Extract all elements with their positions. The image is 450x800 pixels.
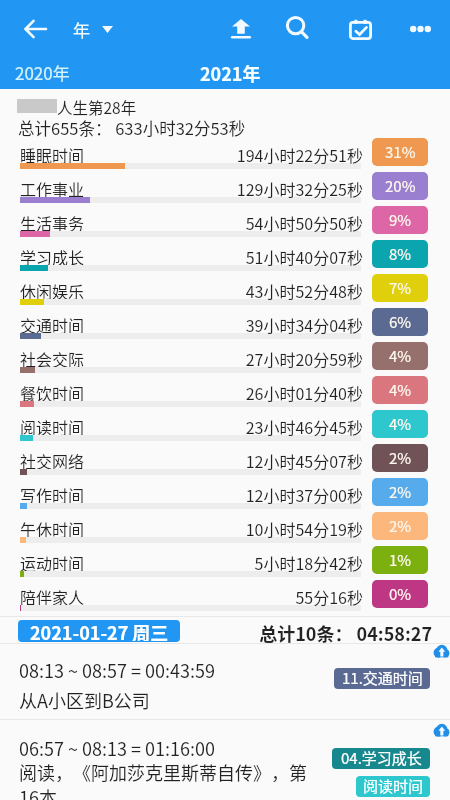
button[interactable]: 2020年 bbox=[0, 58, 150, 89]
staticText: 2020年 bbox=[15, 60, 70, 85]
staticText: 27小时20分59秒 bbox=[130, 347, 363, 370]
staticText: 08:13 ~ 08:57 = 00:43:59 bbox=[19, 657, 215, 683]
staticText: 11.交通时间 bbox=[342, 668, 423, 688]
button[interactable]: 阅读时间 bbox=[356, 776, 430, 797]
button[interactable]: 餐饮时间 bbox=[0, 376, 450, 410]
button[interactable]: 运动时间 bbox=[0, 546, 450, 580]
staticText: 23小时46分45秒 bbox=[130, 415, 363, 438]
button[interactable]: 08:13 ~ 08:57 = 00:43:59 bbox=[0, 644, 450, 719]
staticText: 午休时间 bbox=[20, 517, 85, 540]
button[interactable]: 社交网络 bbox=[0, 444, 450, 478]
button[interactable]: 学习成长 bbox=[0, 240, 450, 274]
button[interactable]: 2021年 bbox=[150, 58, 310, 89]
staticText: 生活事务 bbox=[20, 211, 85, 234]
staticText: 阅读时间 bbox=[20, 415, 85, 438]
button[interactable]: Calendar bbox=[336, 5, 384, 53]
staticText: 阅读，《阿加莎克里斯蒂自传》，第 16本 bbox=[19, 759, 319, 800]
button[interactable]: 06:57 ~ 08:13 = 01:16:00 bbox=[0, 720, 450, 800]
staticText: 年 bbox=[73, 17, 90, 42]
button[interactable]: Back bbox=[11, 5, 59, 53]
staticText: 2021-01-27 周三 bbox=[30, 620, 169, 641]
staticText: 工作事业 bbox=[20, 177, 85, 200]
staticText: 43小时52分48秒 bbox=[130, 279, 363, 302]
button[interactable]: 写作时间 bbox=[0, 478, 450, 512]
staticText: 51小时40分07秒 bbox=[130, 245, 363, 268]
button[interactable]: Sync to cloud bbox=[433, 644, 450, 658]
staticText: 10小时54分19秒 bbox=[130, 517, 363, 540]
staticText: 写作时间 bbox=[20, 483, 85, 506]
staticText: 总计10条： 04:58:27 bbox=[252, 620, 432, 646]
staticText: 39小时34分04秒 bbox=[130, 313, 363, 336]
button[interactable]: 阅读时间 bbox=[0, 410, 450, 444]
staticText: 社交网络 bbox=[20, 449, 85, 472]
staticText: 5小时18分42秒 bbox=[130, 551, 363, 574]
button[interactable]: 陪伴家人 bbox=[0, 580, 450, 614]
staticText: 4% bbox=[389, 379, 412, 401]
staticText: 55分16秒 bbox=[130, 585, 363, 608]
staticText: 06:57 ~ 08:13 = 01:16:00 bbox=[19, 735, 215, 761]
staticText: 人生第28年 bbox=[57, 96, 137, 118]
staticText: 陪伴家人 bbox=[20, 585, 85, 608]
staticText: 2% bbox=[389, 447, 412, 469]
staticText: 2% bbox=[389, 481, 412, 503]
staticText: 1% bbox=[389, 549, 412, 571]
staticText: 餐饮时间 bbox=[20, 381, 85, 404]
button[interactable]: 生活事务 bbox=[0, 206, 450, 240]
staticText: 6% bbox=[389, 311, 412, 333]
staticText: 8% bbox=[389, 243, 412, 265]
staticText: 睡眠时间 bbox=[20, 143, 85, 166]
staticText: 运动时间 bbox=[20, 551, 85, 574]
staticText: 阅读时间 bbox=[363, 776, 424, 796]
staticText: 学习成长 bbox=[20, 245, 85, 268]
staticText: 20% bbox=[385, 175, 416, 197]
staticText: 2% bbox=[389, 515, 412, 537]
button[interactable]: 04.学习成长 bbox=[332, 748, 430, 769]
button[interactable]: 工作事业 bbox=[0, 172, 450, 206]
staticText: 194小时22分51秒 bbox=[130, 143, 363, 166]
staticText: 9% bbox=[389, 209, 412, 231]
button[interactable]: 午休时间 bbox=[0, 512, 450, 546]
staticText: 12小时45分07秒 bbox=[130, 449, 363, 472]
staticText: 12小时37分00秒 bbox=[130, 483, 363, 506]
staticText: 7% bbox=[389, 277, 412, 299]
staticText: 26小时01分40秒 bbox=[130, 381, 363, 404]
staticText: 休闲娱乐 bbox=[20, 279, 85, 302]
staticText: 从A小区到B公司 bbox=[19, 687, 150, 713]
button[interactable]: 社会交际 bbox=[0, 342, 450, 376]
staticText: 0% bbox=[389, 583, 412, 605]
staticText: 4% bbox=[389, 345, 412, 367]
staticText: 31% bbox=[385, 141, 416, 163]
staticText: 4% bbox=[389, 413, 412, 435]
staticText: 2021年 bbox=[200, 60, 261, 86]
button[interactable]: 2021-01-27 周三 bbox=[18, 620, 180, 642]
staticText: 54小时50分50秒 bbox=[130, 211, 363, 234]
staticText: 社会交际 bbox=[20, 347, 85, 370]
button[interactable]: 11.交通时间 bbox=[334, 668, 430, 689]
button[interactable]: 交通时间 bbox=[0, 308, 450, 342]
staticText: 129小时32分25秒 bbox=[130, 177, 363, 200]
staticText: 交通时间 bbox=[20, 313, 85, 336]
button[interactable]: Search bbox=[274, 5, 322, 53]
staticText: 04.学习成长 bbox=[341, 748, 422, 768]
button[interactable]: Sync to cloud bbox=[433, 723, 450, 737]
button[interactable]: Upload bbox=[217, 5, 265, 53]
button[interactable]: 年 bbox=[73, 10, 121, 48]
button[interactable]: 休闲娱乐 bbox=[0, 274, 450, 308]
button[interactable]: More bbox=[396, 5, 444, 53]
button[interactable]: 睡眠时间 bbox=[0, 138, 450, 172]
staticText: 总计655条： 633小时32分53秒 bbox=[18, 116, 246, 140]
